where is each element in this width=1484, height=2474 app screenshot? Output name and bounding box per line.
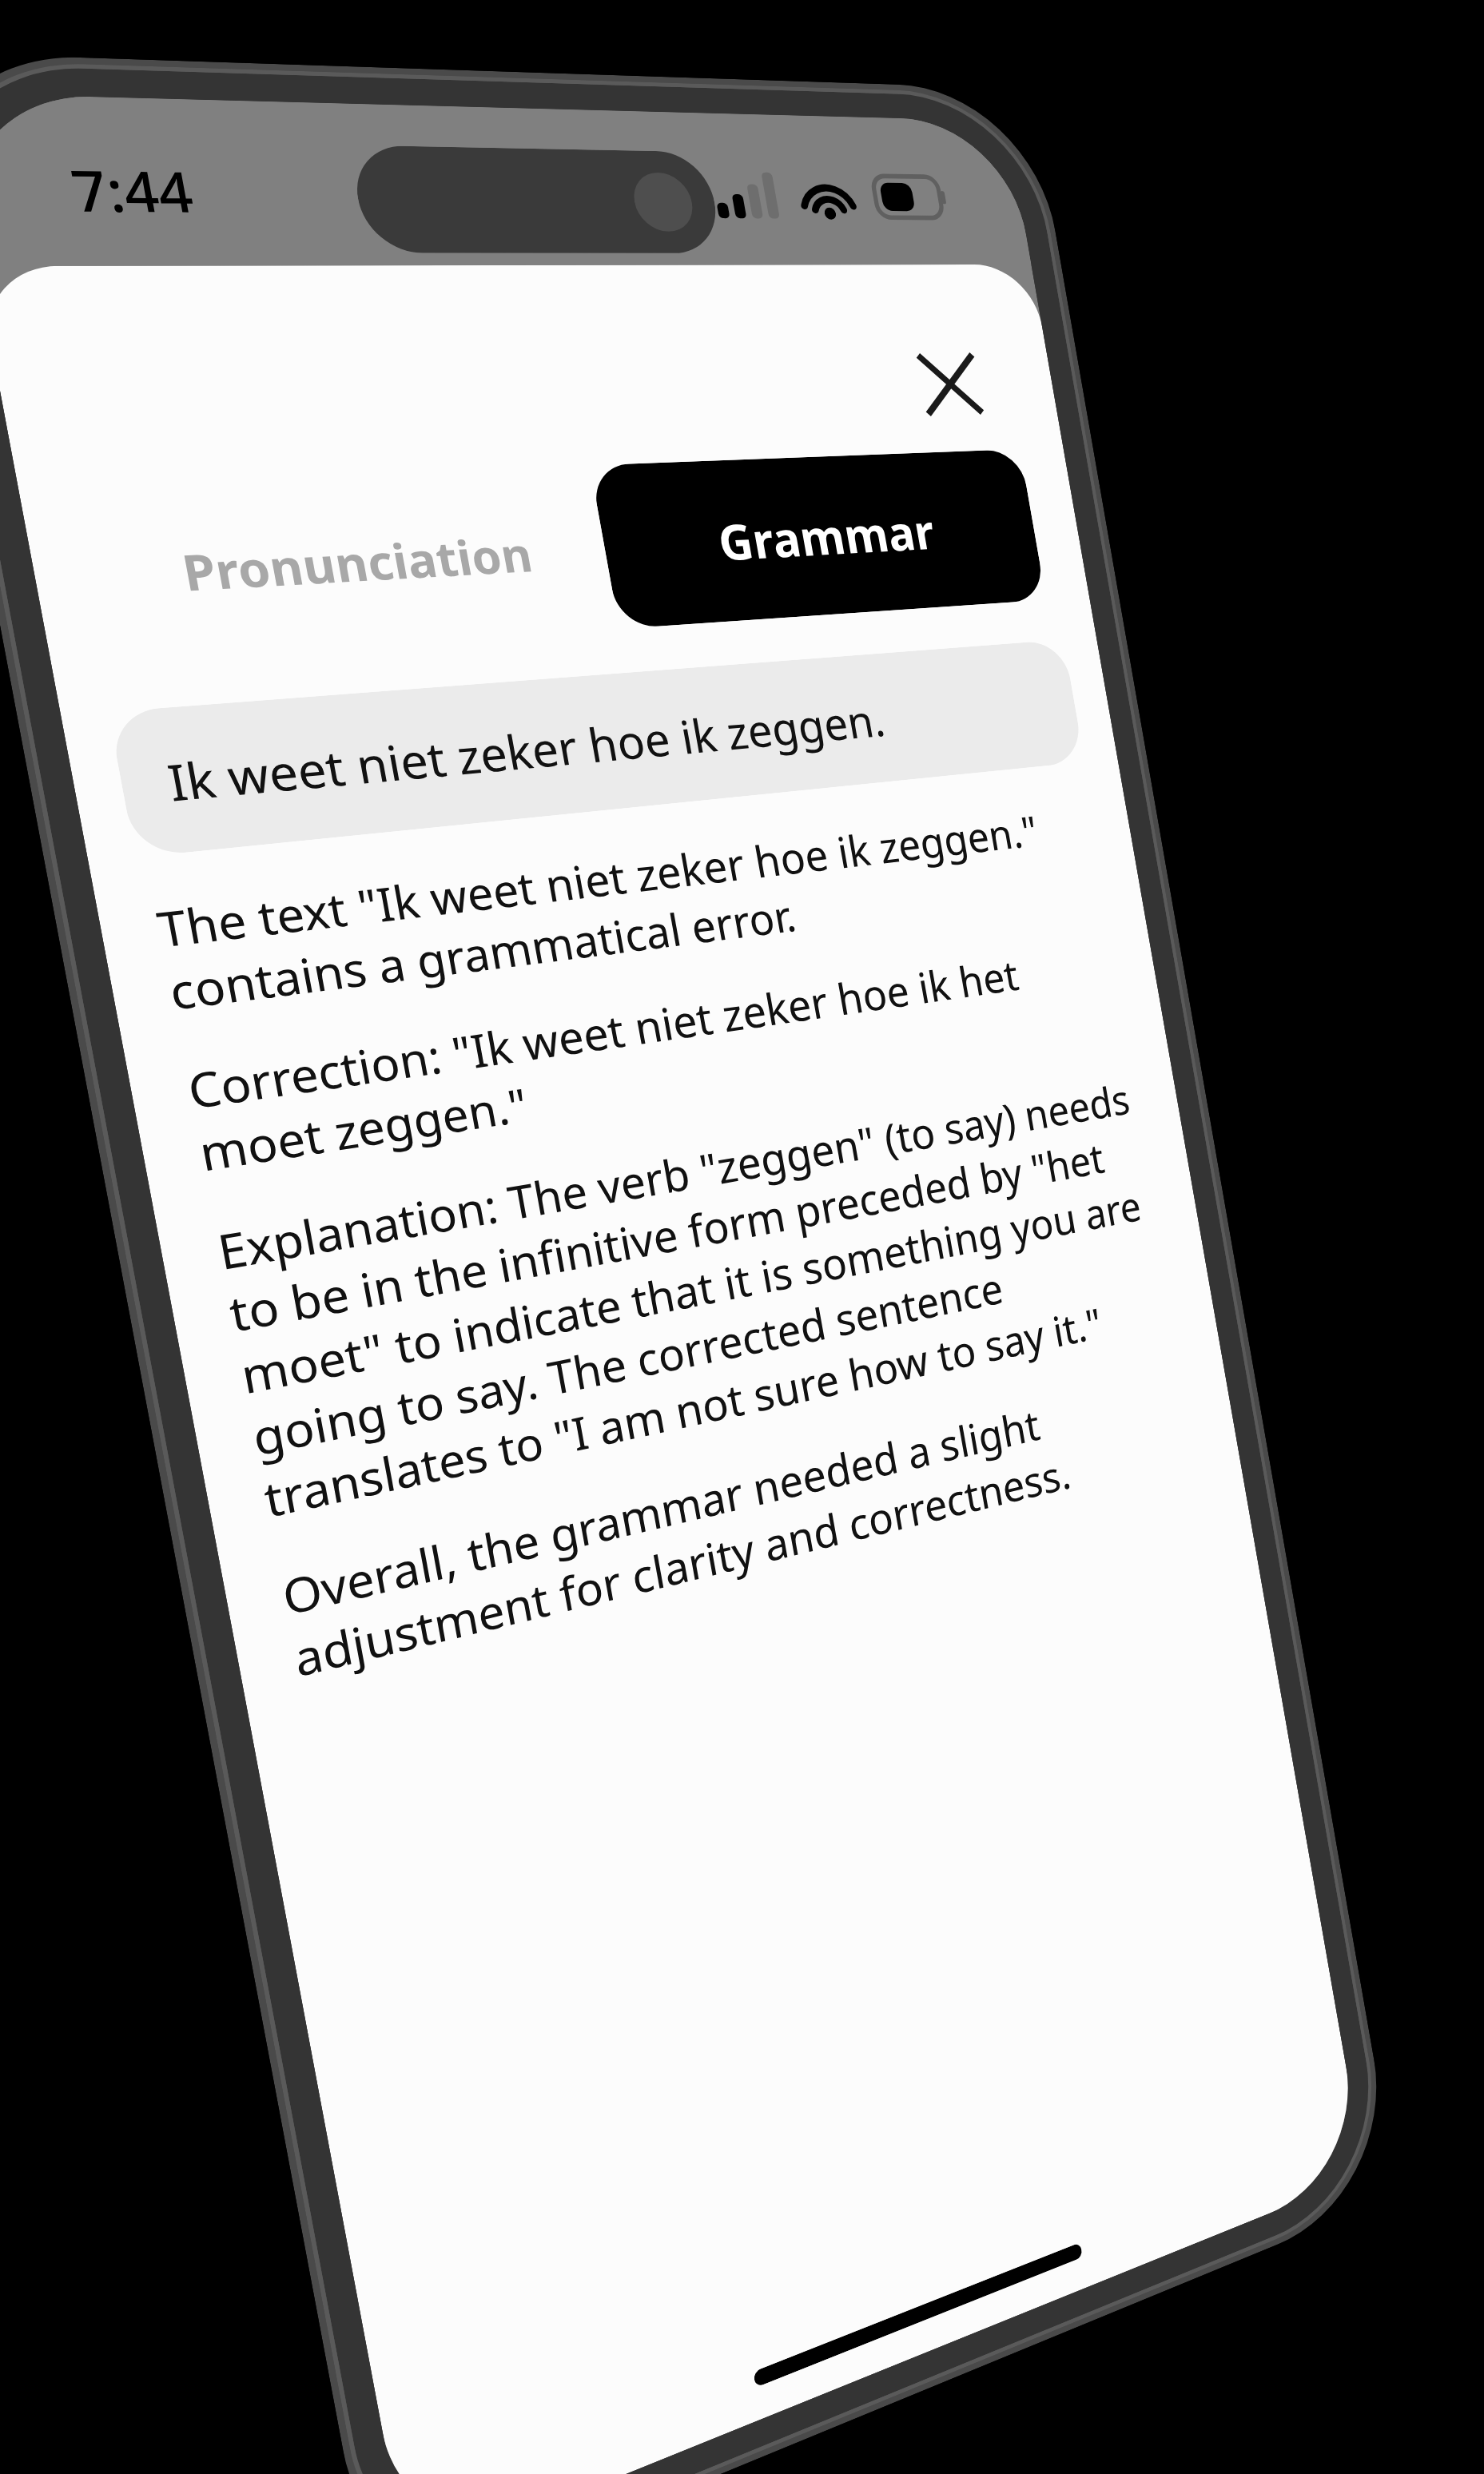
staticText: Pronunciation (176, 521, 539, 604)
staticText: Explanation: The verb "zeggen" (to say) … (212, 1068, 1178, 1531)
button[interactable]: Close (888, 327, 1011, 442)
staticText: The text "Ik weet niet zeker hoe ik zegg… (152, 795, 1103, 1023)
staticText: Ik weet niet zeker hoe ik zeggen. (162, 688, 889, 814)
staticText: Grammar (712, 498, 940, 574)
staticText: Correction: "Ik weet niet zeker hoe ik h… (182, 932, 1127, 1184)
staticText: Overall, the grammar needed a slight adj… (277, 1361, 1202, 1690)
button[interactable]: Pronunciation (83, 481, 617, 648)
button[interactable]: Grammar (590, 449, 1046, 629)
button[interactable]: Ik weet niet zeker hoe ik zeggen. (108, 639, 1085, 858)
staticText: 7:44 (65, 150, 199, 227)
